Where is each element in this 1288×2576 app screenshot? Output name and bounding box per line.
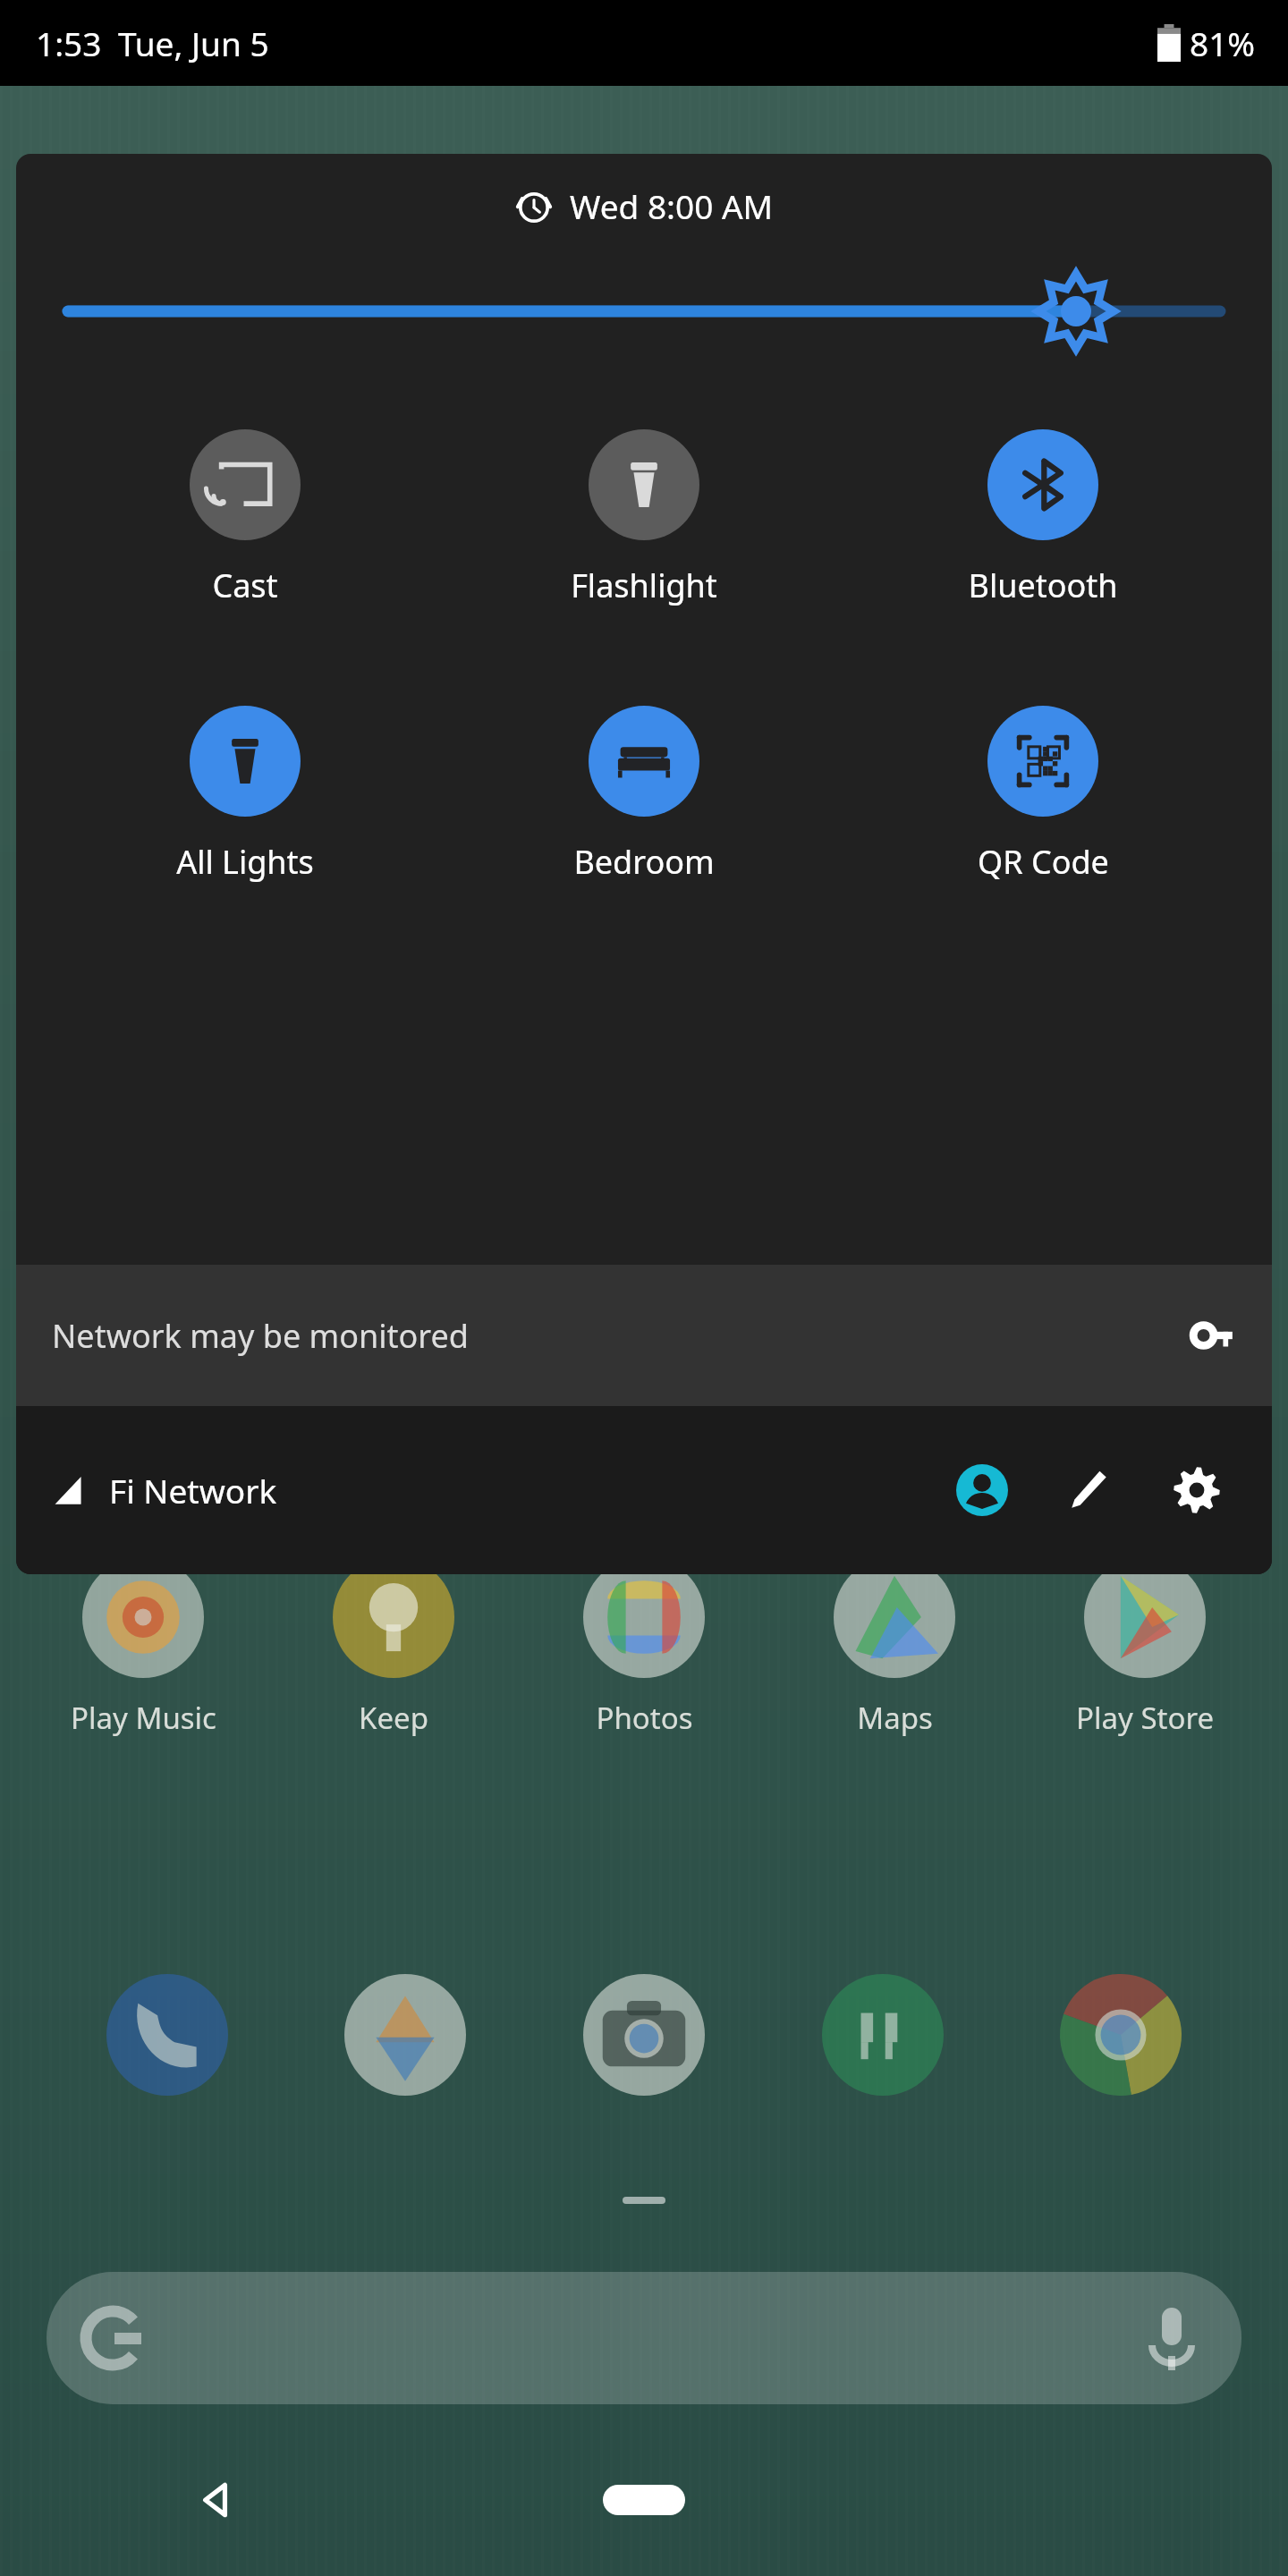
staticText: Keep [359, 1698, 428, 1738]
button[interactable]: Drive [334, 1963, 477, 2106]
button[interactable]: Home [429, 2424, 859, 2576]
staticText: All Lights [176, 840, 314, 884]
button[interactable]: Settings [1154, 1447, 1240, 1533]
button[interactable]: Keep [286, 1556, 501, 1738]
button[interactable]: QR Code [873, 700, 1213, 889]
button[interactable]: Chrome [1049, 1963, 1192, 2106]
staticText: 81% [1190, 21, 1256, 65]
staticText: Network may be monitored [52, 1314, 469, 1358]
button[interactable]: Fi Network [52, 1468, 277, 1513]
button[interactable] [47, 2272, 1241, 2404]
staticText: Play Music [71, 1698, 216, 1738]
staticText: Bedroom [573, 840, 715, 884]
other: VPN [1190, 1312, 1236, 1359]
button[interactable]: Network may be monitored [16, 1265, 1272, 1406]
button[interactable]: Maps [787, 1556, 1002, 1738]
button[interactable]: Play Store [1038, 1556, 1252, 1738]
button[interactable]: Wed 8:00 AM [16, 154, 1272, 258]
staticText: Cast [212, 563, 278, 607]
button[interactable]: Hangouts [811, 1963, 954, 2106]
staticText: Fi Network [109, 1468, 277, 1513]
button[interactable]: All Lights [75, 700, 415, 889]
staticText: Flashlight [571, 563, 717, 607]
staticText: Wed 8:00 AM [570, 183, 774, 228]
button[interactable]: Bedroom [474, 700, 814, 889]
button[interactable]: Camera [572, 1963, 716, 2106]
staticText: Tue, Jun 5 [118, 21, 269, 65]
button[interactable]: Cast [75, 424, 415, 613]
staticText: Photos [596, 1698, 693, 1738]
staticText: QR Code [978, 840, 1109, 884]
button[interactable]: Play Music [36, 1556, 250, 1738]
button[interactable]: Flashlight [474, 424, 814, 613]
button[interactable]: Edit [1046, 1447, 1132, 1533]
button[interactable]: Brightness [16, 258, 1272, 365]
button[interactable]: Bluetooth [873, 424, 1213, 613]
staticText: Bluetooth [968, 563, 1118, 607]
button[interactable]: User [939, 1447, 1025, 1533]
button[interactable]: Back [0, 2424, 429, 2576]
button[interactable]: Photos [537, 1556, 751, 1738]
button[interactable]: Phone [96, 1963, 239, 2106]
staticText: Play Store [1076, 1698, 1214, 1738]
staticText: 1:53 [36, 21, 102, 65]
staticText: Maps [857, 1698, 933, 1738]
